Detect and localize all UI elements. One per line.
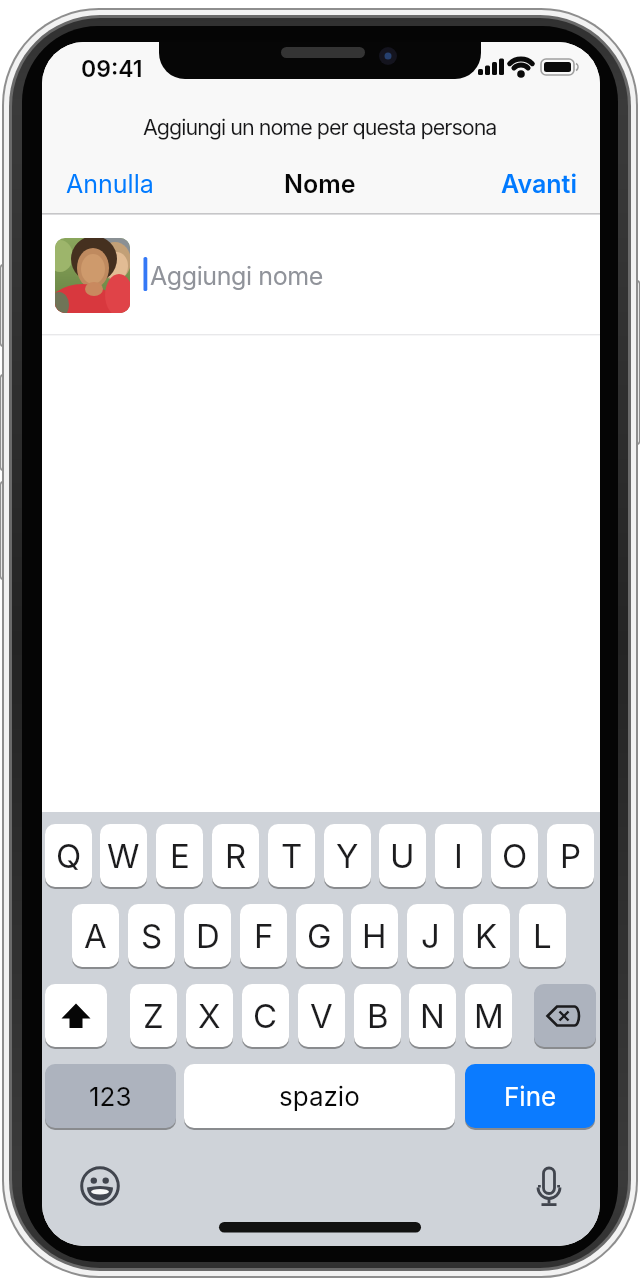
staticText: Nome	[284, 169, 356, 199]
button[interactable]: 123	[45, 1064, 176, 1128]
staticText: Avanti	[501, 169, 577, 199]
button[interactable]: M	[465, 984, 512, 1047]
button[interactable]: N	[409, 984, 456, 1047]
button[interactable]: C	[242, 984, 289, 1047]
staticText: R	[225, 836, 247, 876]
staticText: M	[474, 996, 504, 1036]
staticText: Z	[143, 996, 164, 1036]
button[interactable]: S	[128, 904, 175, 967]
staticText: S	[141, 916, 163, 956]
button[interactable]: I	[435, 824, 482, 887]
staticText: C	[253, 996, 278, 1036]
staticText: O	[502, 836, 528, 876]
staticText: spazio	[279, 1081, 360, 1112]
button[interactable]: Z	[130, 984, 177, 1047]
button[interactable]: Avanti	[501, 169, 577, 199]
staticText: Aggiungi un nome per questa persona	[143, 114, 497, 140]
staticText: G	[307, 916, 332, 956]
staticText: V	[310, 996, 333, 1036]
staticText: U	[390, 836, 415, 876]
button[interactable]: U	[379, 824, 426, 887]
staticText: D	[196, 916, 220, 956]
button[interactable]: Aggiungi nome	[150, 261, 323, 291]
staticText: Aggiungi nome	[150, 261, 323, 291]
staticText: E	[170, 836, 190, 876]
staticText: H	[362, 916, 387, 956]
button[interactable]: A	[72, 904, 119, 967]
staticText: Fine	[504, 1081, 557, 1112]
button[interactable]: J	[407, 904, 454, 967]
button[interactable]: Q	[45, 824, 92, 887]
staticText: N	[420, 996, 445, 1036]
button[interactable]: spazio	[184, 1064, 455, 1128]
button[interactable]: O	[491, 824, 538, 887]
button[interactable]	[535, 1160, 565, 1210]
button[interactable]: L	[519, 904, 566, 967]
button[interactable]: R	[212, 824, 259, 887]
staticText: 09:41	[81, 55, 143, 83]
button[interactable]: D	[184, 904, 231, 967]
button[interactable]: Y	[324, 824, 371, 887]
button[interactable]: W	[100, 824, 147, 887]
staticText: Q	[56, 836, 82, 876]
staticText: I	[454, 836, 463, 876]
staticText: P	[560, 836, 582, 876]
button[interactable]: Annulla	[66, 169, 154, 199]
button[interactable]: T	[268, 824, 315, 887]
staticText: J	[421, 916, 440, 956]
staticText: B	[367, 996, 389, 1036]
staticText: Y	[336, 836, 359, 876]
staticText: K	[475, 916, 498, 956]
staticText: X	[198, 996, 221, 1036]
button[interactable]: H	[351, 904, 398, 967]
staticText: F	[254, 916, 274, 956]
staticText: Annulla	[66, 169, 154, 199]
button[interactable]: V	[298, 984, 345, 1047]
button[interactable]: G	[296, 904, 343, 967]
staticText: L	[533, 916, 552, 956]
staticText: T	[281, 836, 303, 876]
button[interactable]: X	[186, 984, 233, 1047]
button[interactable]: E	[156, 824, 203, 887]
button[interactable]: F	[240, 904, 287, 967]
button[interactable]	[534, 984, 596, 1047]
staticText: A	[84, 916, 107, 956]
staticText: W	[107, 836, 140, 876]
button[interactable]: K	[463, 904, 510, 967]
button[interactable]: B	[354, 984, 401, 1047]
button[interactable]	[80, 1166, 120, 1206]
button[interactable]: Fine	[465, 1064, 595, 1128]
staticText: 123	[89, 1081, 132, 1112]
button[interactable]: P	[547, 824, 594, 887]
button[interactable]	[45, 984, 107, 1047]
button[interactable]	[55, 238, 130, 313]
